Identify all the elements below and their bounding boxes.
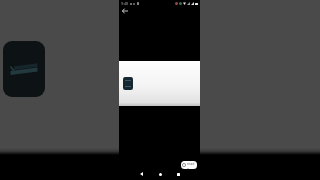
button[interactable]: Back xyxy=(120,6,129,15)
staticText: 9:48 xyxy=(121,1,129,6)
button[interactable]: App thumbnail xyxy=(3,41,45,97)
staticText: made xyxy=(187,161,196,169)
button[interactable]: Back xyxy=(136,169,146,179)
button[interactable]: Home xyxy=(155,169,165,179)
button[interactable]: made xyxy=(181,161,197,169)
button[interactable]: Recent apps xyxy=(173,169,183,179)
button[interactable]: List item xyxy=(123,77,133,90)
